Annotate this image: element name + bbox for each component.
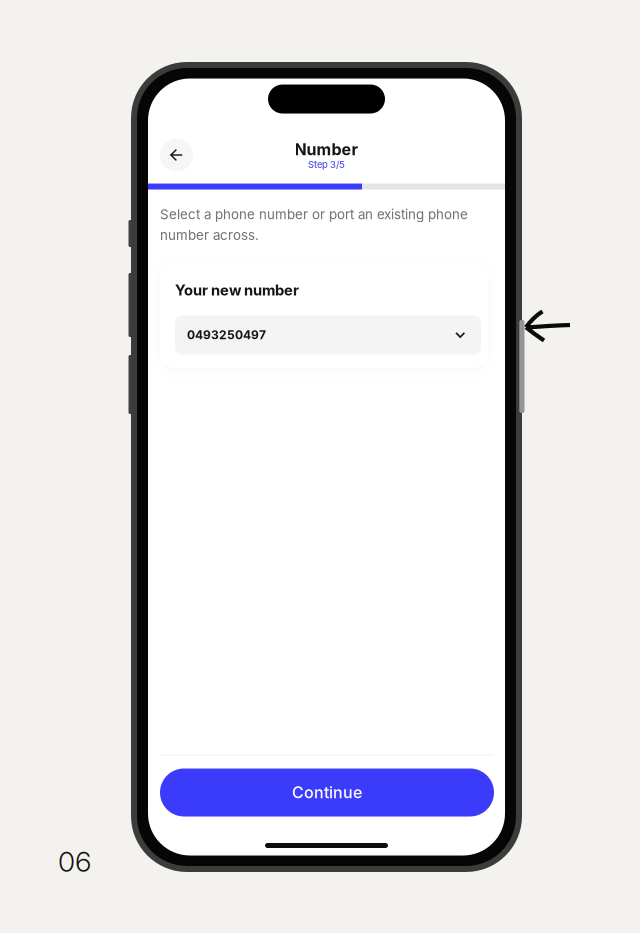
staticText: 0493250497 xyxy=(187,328,266,342)
staticText: 06 xyxy=(58,845,91,878)
staticText: Number xyxy=(294,140,358,159)
button[interactable]: Continue xyxy=(160,768,494,816)
staticText: Step 3/5 xyxy=(308,159,345,170)
staticText: Continue xyxy=(292,783,362,802)
staticText: Select a phone number or port an existin… xyxy=(160,206,468,243)
staticText: Your new number xyxy=(175,281,299,299)
button[interactable]: 0493250497 xyxy=(175,315,481,354)
button[interactable]: Back xyxy=(154,132,199,177)
